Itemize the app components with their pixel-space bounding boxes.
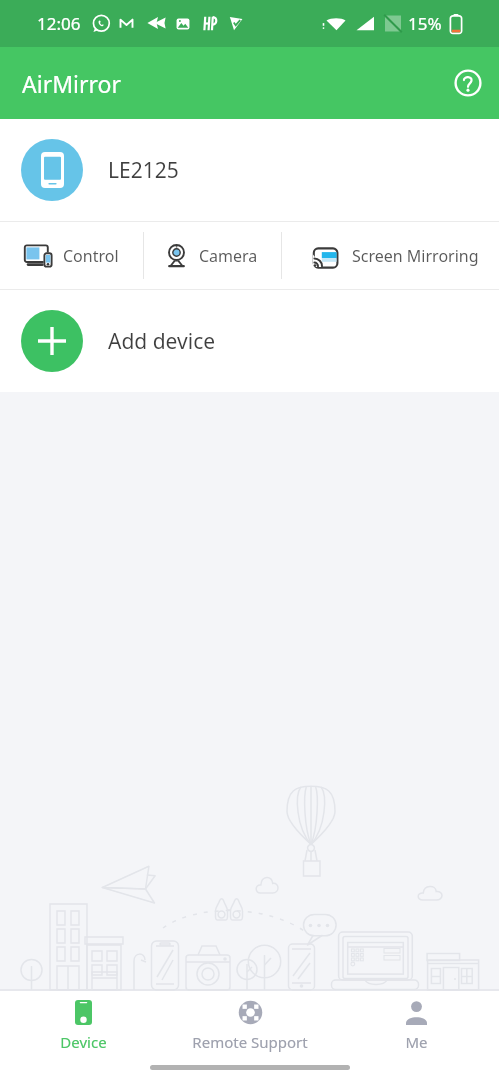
- staticText: Control: [63, 245, 119, 267]
- button[interactable]: Add device: [0, 290, 499, 392]
- button[interactable]: Screen Mirroring: [282, 222, 499, 289]
- button[interactable]: Me: [333, 991, 499, 1055]
- button[interactable]: Remote Support: [167, 991, 333, 1055]
- staticText: Screen Mirroring: [352, 245, 479, 267]
- staticText: AirMirror: [22, 68, 121, 99]
- button[interactable]: Control: [0, 222, 143, 289]
- button[interactable]: LE2125: [0, 119, 499, 221]
- staticText: Camera: [199, 245, 258, 267]
- button[interactable]: Help: [444, 59, 492, 107]
- button[interactable]: Device: [0, 991, 167, 1055]
- staticText: Device: [60, 1032, 107, 1052]
- button[interactable]: Camera: [144, 222, 281, 289]
- staticText: Me: [405, 1032, 428, 1052]
- staticText: Remote Support: [192, 1032, 308, 1052]
- staticText: 12:06: [37, 12, 81, 35]
- staticText: LE2125: [108, 156, 179, 185]
- staticText: 15%: [408, 12, 442, 35]
- staticText: Add device: [108, 327, 216, 356]
